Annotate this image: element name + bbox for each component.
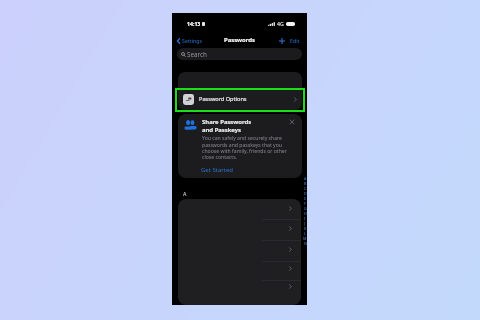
button[interactable] <box>178 199 301 219</box>
staticText: Passwords <box>224 36 255 44</box>
button[interactable]: Dismiss <box>287 117 296 126</box>
staticText: K <box>304 226 307 231</box>
staticText: A <box>304 176 307 181</box>
staticText: You can safely and securely share passwo… <box>202 135 289 160</box>
button[interactable]: Get Started <box>201 166 234 174</box>
staticText: D <box>304 191 307 196</box>
button[interactable]: Search <box>177 48 302 60</box>
button[interactable]: Add password <box>277 36 286 45</box>
button[interactable] <box>178 280 301 292</box>
staticText: L <box>304 231 307 236</box>
staticText: Settings <box>182 37 203 44</box>
staticText: 4G <box>277 20 284 27</box>
staticText: Password Options <box>199 95 247 103</box>
staticText: Search <box>187 50 207 59</box>
button[interactable]: Edit <box>288 35 307 46</box>
button[interactable]: Password Options <box>178 89 302 110</box>
staticText: and Passkeys <box>202 126 241 134</box>
button[interactable]: Settings <box>172 35 207 46</box>
staticText: C <box>304 186 307 191</box>
staticText: H <box>304 211 307 216</box>
staticText: I <box>304 216 306 221</box>
staticText: M <box>303 236 307 241</box>
staticText: 14:13 <box>187 20 201 27</box>
button[interactable]: Alphabet index <box>303 176 307 246</box>
staticText: F <box>304 201 306 206</box>
staticText: N <box>304 241 307 246</box>
staticText: G <box>304 206 307 211</box>
staticText: A <box>183 190 187 197</box>
staticText: B <box>304 181 307 186</box>
staticText: E <box>304 196 307 201</box>
staticText: Share Passwords <box>202 118 252 126</box>
staticText: J <box>304 221 306 226</box>
